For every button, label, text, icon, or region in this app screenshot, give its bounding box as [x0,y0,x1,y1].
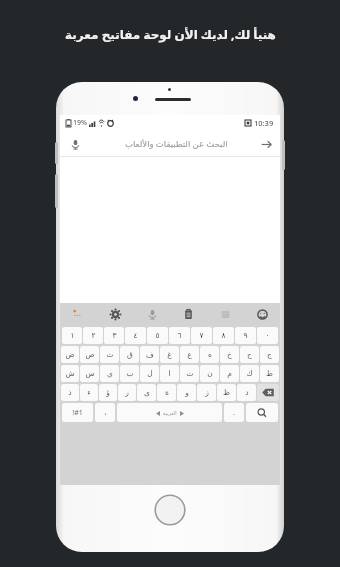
button[interactable]: ك [240,365,259,382]
button[interactable]: ف [140,346,159,363]
button[interactable]: ١ [62,327,82,344]
staticText: ء [87,388,91,397]
button[interactable]: ث [100,346,119,363]
button[interactable]: More [70,306,86,322]
button[interactable]: غ [160,346,179,363]
button[interactable]: Clipboard [180,306,196,322]
staticText: . [233,408,235,418]
staticText: ه [208,350,212,359]
button[interactable]: س [80,365,99,382]
button[interactable]: ل [140,365,159,382]
staticText: خ [227,350,232,359]
button[interactable]: ن [200,365,219,382]
staticText: ب [126,369,134,378]
staticText: ٥ [155,331,160,340]
staticText: ط [266,369,273,378]
staticText: م [227,369,232,378]
button[interactable]: Search [246,403,278,422]
staticText: ف [146,350,154,359]
staticText: هنيأ لك, لديك الأن لوحة مفاتيح معربة [65,26,276,42]
staticText: ع [187,350,192,359]
staticText: ى [144,388,150,397]
staticText: و [185,388,189,397]
button[interactable]: Settings [107,306,123,322]
staticText: د [245,388,249,397]
staticText: ؤ [106,388,110,397]
button[interactable]: Voice search [68,137,82,151]
staticText: س [85,369,95,378]
staticText: ث [106,350,114,359]
staticText: 10:39 [254,118,274,128]
button[interactable]: ح [240,346,259,363]
staticText: ١ [70,331,75,340]
button[interactable]: ه [200,346,219,363]
staticText: ا [168,369,171,378]
button[interactable]: ر [118,384,136,401]
staticText: ن [207,369,213,378]
button[interactable]: ي [100,365,119,382]
staticText: ظ [223,388,230,397]
staticText: ذ [68,388,72,397]
button[interactable]: ٦ [169,327,190,344]
staticText: ح [247,350,252,359]
button[interactable]: Voice search [60,131,280,157]
button[interactable]: Stickers [217,306,233,322]
staticText: ش [65,369,75,378]
staticText: ر [125,388,129,397]
button[interactable]: ع [180,346,199,363]
button[interactable]: و [177,384,196,401]
button[interactable]: ض [61,346,79,363]
button[interactable]: ش [61,365,79,382]
button[interactable]: !#1 [62,403,93,422]
staticText: ٧ [199,331,204,340]
button[interactable]: ت [180,365,199,382]
button[interactable]: ٠ [257,327,278,344]
staticText: ل [147,369,153,378]
staticText: ي [107,369,113,378]
button[interactable]: ا [160,365,179,382]
staticText: ة [165,388,169,397]
button[interactable]: ٥ [147,327,168,344]
button[interactable]: Home [154,494,186,526]
button[interactable]: Backspace [257,384,279,401]
staticText: ٢ [91,331,96,340]
button[interactable]: ء [80,384,98,401]
staticText: ٤ [133,331,138,340]
button[interactable]: ب [120,365,139,382]
button[interactable]: ؤ [99,384,117,401]
button[interactable]: ج [260,346,279,363]
button[interactable]: ص [80,346,99,363]
button[interactable]: د [237,384,256,401]
button[interactable]: ة [157,384,176,401]
staticText: ، [104,409,107,417]
button[interactable]: ق [120,346,139,363]
button[interactable]: ط [260,365,279,382]
button[interactable]: ٧ [191,327,212,344]
button[interactable]: Voice typing [144,306,160,322]
button[interactable]: ذ [61,384,79,401]
staticText: ص [85,350,95,359]
staticText: ق [127,350,133,359]
button[interactable]: Space [117,403,222,422]
staticText: ج [267,350,272,359]
button[interactable]: خ [220,346,239,363]
button[interactable]: Emoji [254,306,270,322]
button[interactable]: ٩ [235,327,256,344]
button[interactable]: ظ [217,384,236,401]
staticText: ك [246,369,253,378]
button[interactable]: ٤ [125,327,146,344]
button[interactable]: ز [197,384,216,401]
button[interactable]: Go [259,137,273,151]
staticText: غ [167,350,172,359]
button[interactable]: . [224,403,244,422]
button[interactable]: ، [95,403,115,422]
staticText: البحث عن التطبيقات والألعاب [125,138,228,150]
staticText: 19% [73,118,87,128]
button[interactable]: ٨ [213,327,234,344]
button[interactable]: م [220,365,239,382]
button[interactable]: ٣ [104,327,124,344]
button[interactable]: ى [137,384,156,401]
button[interactable]: ٢ [83,327,103,344]
staticText: ض [65,350,75,359]
staticText: ٠ [265,331,270,340]
